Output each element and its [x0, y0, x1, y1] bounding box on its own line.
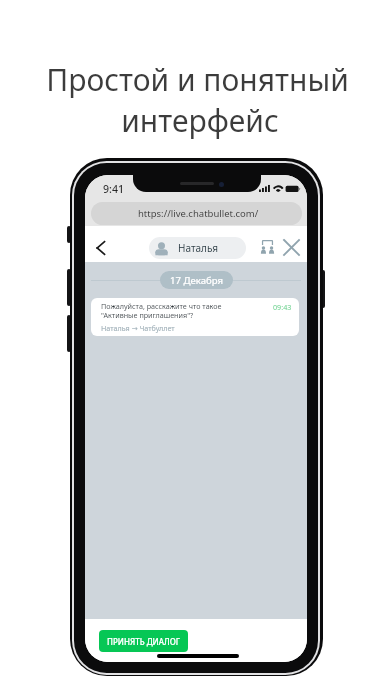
button[interactable]: Transfer dialog	[254, 233, 280, 259]
staticText: 9:41	[103, 182, 125, 196]
staticText: интерфейс	[121, 100, 279, 141]
staticText: Наталья	[178, 241, 218, 255]
button[interactable]: Back	[88, 235, 114, 261]
staticText: 09:43	[273, 302, 292, 312]
button[interactable]: Наталья	[149, 237, 246, 259]
button[interactable]: Пожалуйста, расскажите что такое	[91, 298, 299, 336]
staticText: Простой и понятный	[46, 59, 349, 100]
staticText: Пожалуйста, расскажите что такое	[101, 301, 222, 311]
button[interactable]: Close	[278, 234, 304, 260]
button[interactable]: ПРИНЯТЬ ДИАЛОГ	[99, 630, 188, 652]
button[interactable]: https://live.chatbullet.com/	[91, 202, 302, 225]
staticText: "Активные приглашения"?	[101, 310, 194, 320]
staticText: ПРИНЯТЬ ДИАЛОГ	[107, 636, 180, 647]
staticText: 17 Декабря	[170, 274, 223, 287]
staticText: https://live.chatbullet.com/	[138, 207, 259, 220]
staticText: Наталья → Чатбуллет	[101, 323, 175, 333]
